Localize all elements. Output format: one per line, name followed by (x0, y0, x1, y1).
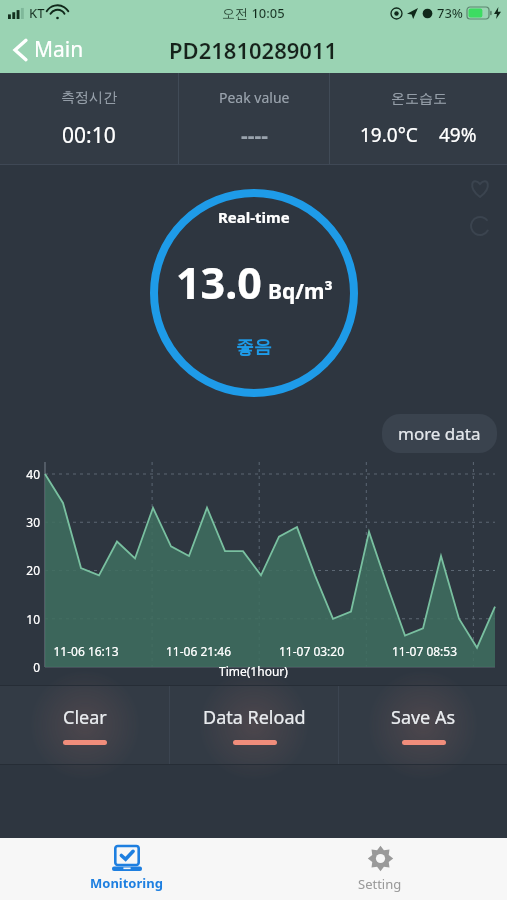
staticText: Bq/m³ (268, 277, 333, 306)
staticText: 11-07 03:20 (255, 643, 368, 659)
staticText: 11-07 08:53 (368, 643, 481, 659)
staticText: 온도습도 (391, 90, 447, 108)
button[interactable]: 온도습도 (330, 73, 507, 165)
staticText: Real-time (218, 207, 290, 227)
staticText: Data Reload (203, 705, 306, 730)
staticText: 20 (14, 562, 40, 578)
button[interactable]: Main (0, 31, 94, 68)
button[interactable]: Monitoring (0, 838, 253, 900)
staticText: 73% (437, 4, 463, 22)
staticText: 30 (14, 514, 40, 530)
button[interactable]: Save As (339, 685, 507, 765)
staticText: 40 (14, 466, 40, 482)
staticText: 오전 10:05 (222, 4, 285, 22)
button[interactable]: Data Reload (170, 685, 338, 765)
staticText: Time(1hour) (219, 663, 288, 679)
staticText: PD21810289011 (169, 35, 338, 65)
staticText: 0 (14, 659, 40, 675)
button[interactable]: Real-time (150, 189, 358, 397)
button[interactable]: more data (382, 414, 497, 453)
staticText: Main (34, 35, 84, 64)
staticText: 11-06 16:13 (30, 643, 142, 659)
staticText: Monitoring (90, 874, 163, 892)
button[interactable]: Setting (253, 838, 507, 900)
staticText: 좋음 (236, 336, 272, 359)
button[interactable]: Peak value (179, 73, 329, 165)
button[interactable]: Refresh (465, 211, 495, 241)
button[interactable]: Favorite (465, 173, 495, 203)
staticText: 13.0 (176, 253, 262, 312)
staticText: Clear (63, 705, 107, 730)
staticText: KT (29, 4, 45, 22)
button[interactable]: Clear (0, 685, 169, 765)
staticText: Setting (358, 875, 402, 893)
staticText: Save As (391, 705, 456, 730)
staticText: ---- (241, 121, 268, 150)
staticText: 11-06 21:46 (142, 643, 255, 659)
staticText: 측정시간 (61, 89, 117, 107)
staticText: more data (398, 422, 481, 445)
staticText: 49% (439, 122, 477, 148)
staticText: Peak value (219, 88, 290, 107)
staticText: 19.0°C (360, 122, 418, 148)
button[interactable]: 측정시간 (0, 73, 178, 165)
staticText: 00:10 (62, 121, 116, 150)
staticText: 10 (14, 611, 40, 627)
